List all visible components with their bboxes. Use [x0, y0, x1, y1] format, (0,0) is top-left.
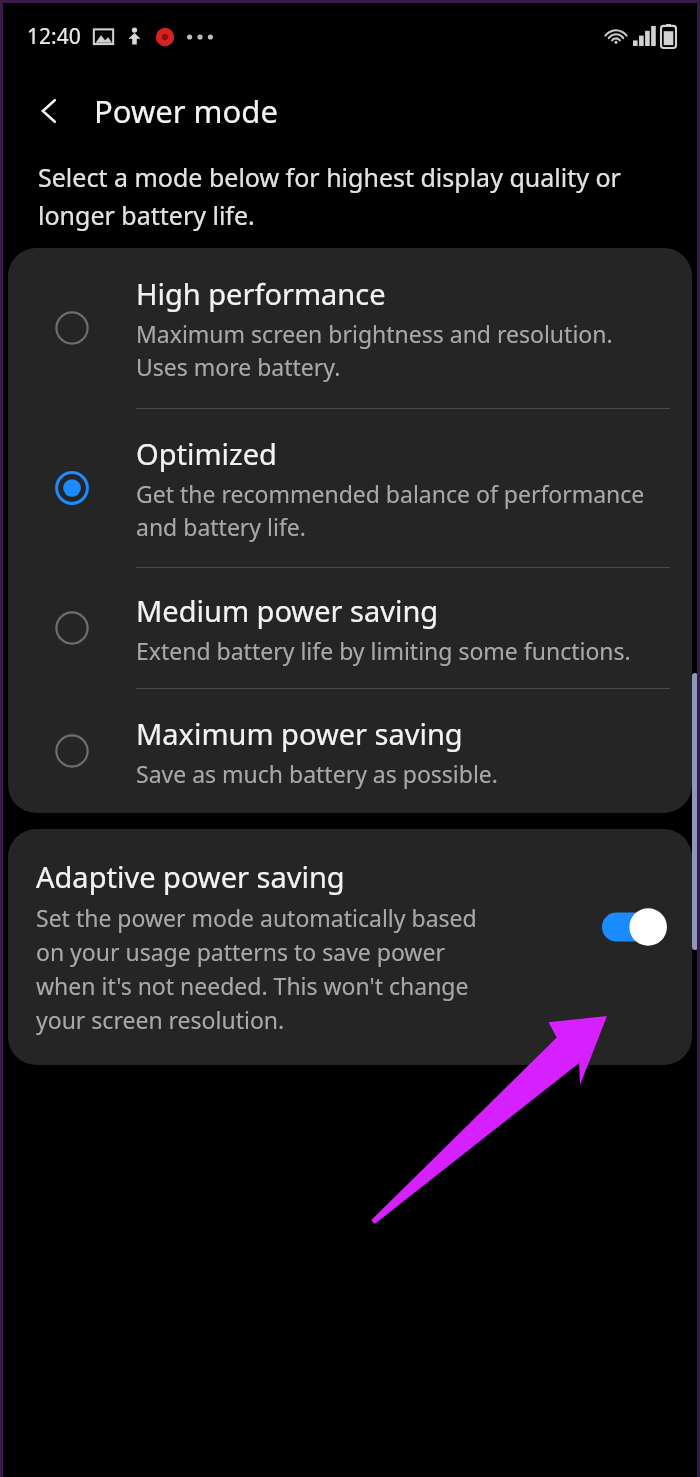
- button[interactable]: Back: [22, 83, 78, 139]
- staticText: Extend battery life by limiting some fun…: [136, 635, 631, 666]
- staticText: 12:40: [27, 22, 81, 51]
- button[interactable]: Adaptive power saving toggle: [602, 907, 670, 947]
- staticText: Power mode: [94, 90, 278, 132]
- staticText: Select a mode below for highest display …: [38, 160, 670, 232]
- button[interactable]: Medium power saving: [8, 568, 692, 688]
- staticText: Set the power mode automatically based o…: [36, 902, 506, 1035]
- staticText: Save as much battery as possible.: [136, 758, 498, 789]
- staticText: High performance: [136, 274, 386, 313]
- staticText: Optimized: [136, 434, 277, 473]
- staticText: Adaptive power saving: [36, 857, 345, 896]
- staticText: Maximum screen brightness and resolution…: [136, 318, 668, 383]
- button[interactable]: High performance: [8, 248, 692, 408]
- button[interactable]: Optimized: [8, 409, 692, 567]
- staticText: Medium power saving: [136, 591, 439, 630]
- staticText: Maximum power saving: [136, 714, 463, 753]
- button[interactable]: Maximum power saving: [8, 689, 692, 813]
- button[interactable]: Adaptive power saving: [8, 829, 692, 1065]
- staticText: Get the recommended balance of performan…: [136, 478, 668, 543]
